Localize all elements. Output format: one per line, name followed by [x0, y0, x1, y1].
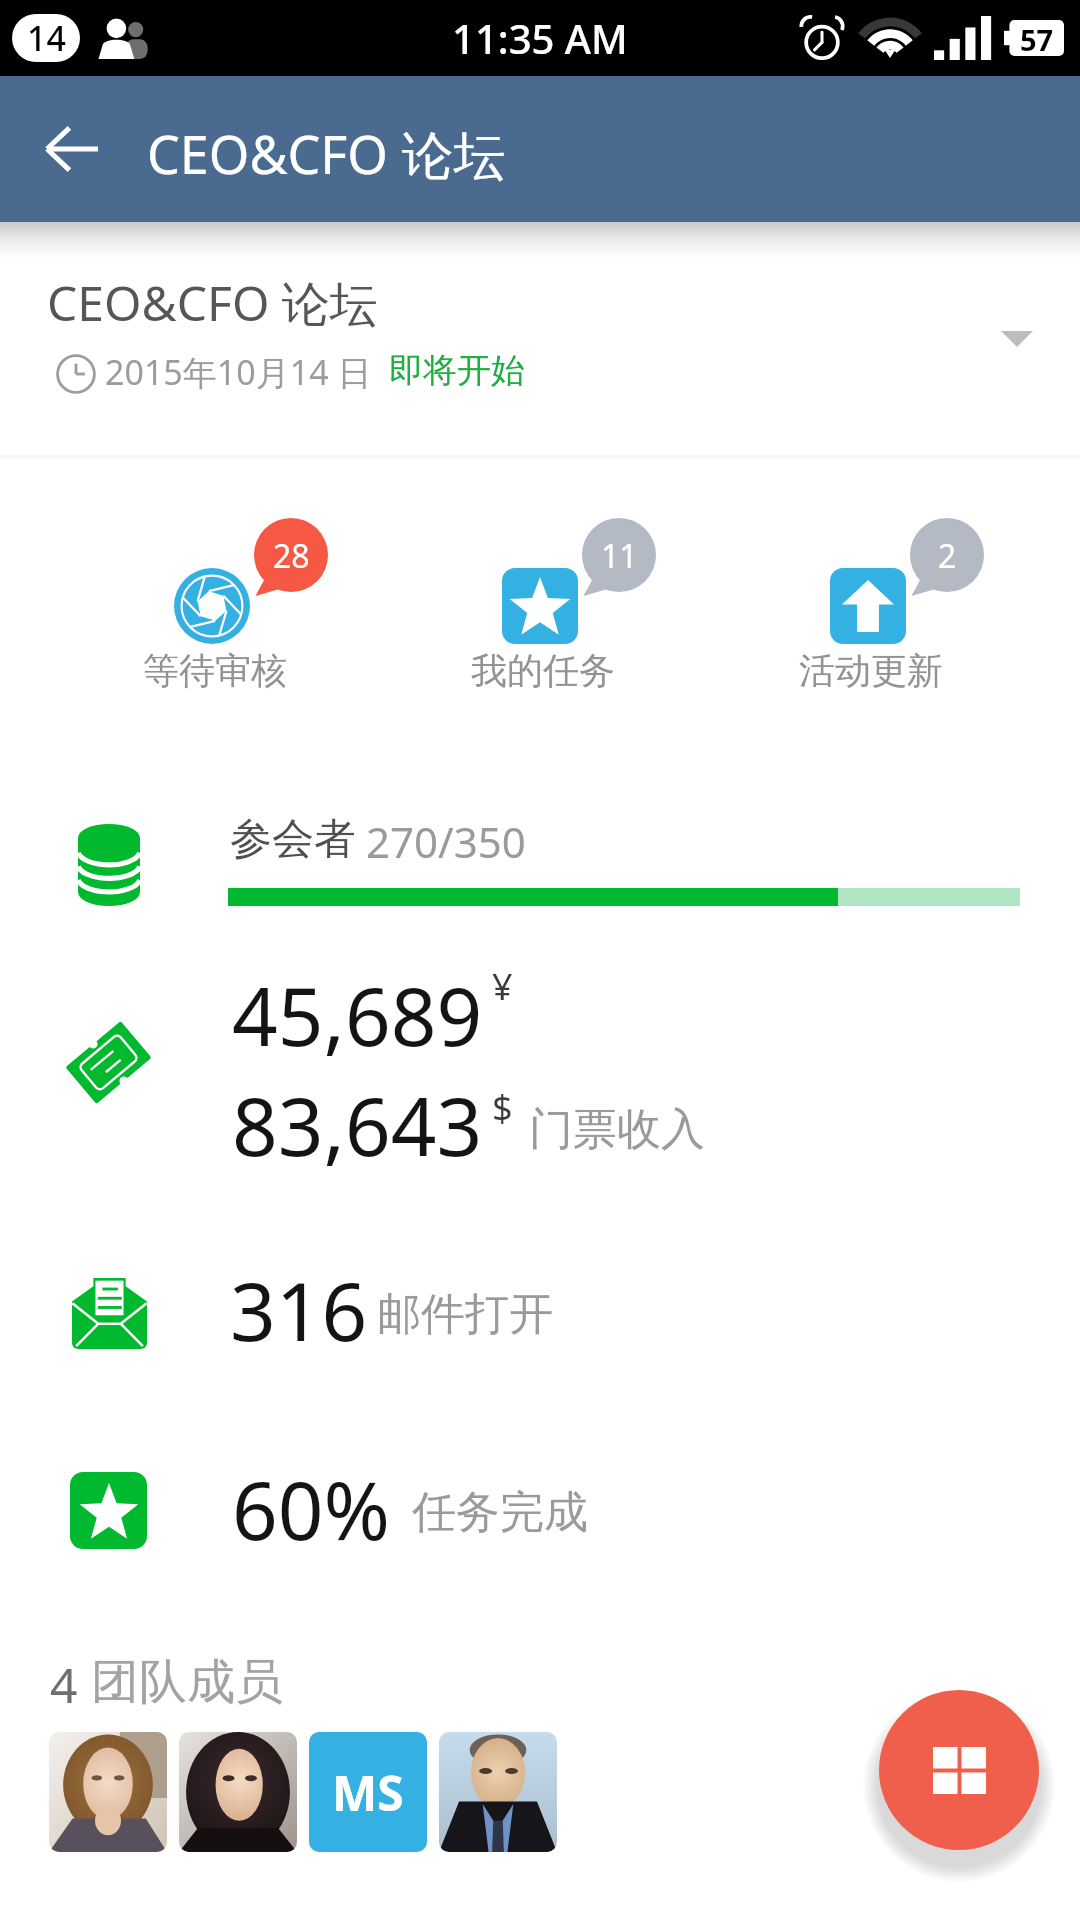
staticText: 2015年10月14 日	[105, 349, 372, 395]
button[interactable]	[787, 540, 953, 700]
staticText: CEO&CFO 论坛	[147, 118, 506, 189]
staticText: 任务完成	[412, 1485, 588, 1540]
staticText: 57	[1020, 20, 1054, 56]
button[interactable]: Apps	[879, 1690, 1039, 1850]
button[interactable]: Team member	[179, 1732, 297, 1852]
staticText: 14	[27, 15, 66, 61]
staticText: 等待审核	[143, 648, 287, 693]
staticText: 60%	[232, 1454, 390, 1563]
staticText: 活动更新	[799, 648, 943, 693]
staticText: MS	[332, 1760, 404, 1825]
staticText: 邮件打开	[377, 1287, 553, 1342]
button[interactable]: Back	[22, 99, 122, 199]
staticText: 团队成员	[91, 1652, 283, 1712]
staticText: 门票收入	[529, 1102, 705, 1157]
button[interactable]	[131, 540, 297, 700]
button[interactable]: 316	[0, 1210, 1080, 1400]
staticText: CEO&CFO 论坛	[47, 270, 378, 336]
button[interactable]: Team member	[439, 1732, 557, 1852]
button[interactable]: 参会者	[0, 770, 1080, 940]
staticText: 即将开始	[389, 349, 525, 392]
button[interactable]: 60%	[0, 1400, 1080, 1590]
button[interactable]	[459, 540, 625, 700]
staticText: 45,689	[232, 960, 483, 1069]
staticText: 28	[273, 534, 310, 578]
staticText: 270/350	[366, 813, 526, 870]
button[interactable]: 45,689	[0, 940, 1080, 1210]
staticText: 2	[938, 534, 957, 578]
button[interactable]: Team member	[49, 1732, 167, 1852]
staticText: ¥	[492, 962, 513, 1011]
button[interactable]: MS	[309, 1732, 427, 1852]
staticText: 我的任务	[471, 648, 615, 693]
staticText: 11:35 AM	[452, 11, 628, 65]
staticText: 316	[230, 1255, 368, 1364]
staticText: 参会者	[230, 813, 356, 866]
staticText: 83,643	[232, 1070, 483, 1179]
staticText: $	[492, 1083, 513, 1132]
staticText: 11	[601, 534, 638, 578]
staticText: 4	[50, 1652, 78, 1717]
button[interactable]: CEO&CFO 论坛	[0, 246, 1080, 454]
